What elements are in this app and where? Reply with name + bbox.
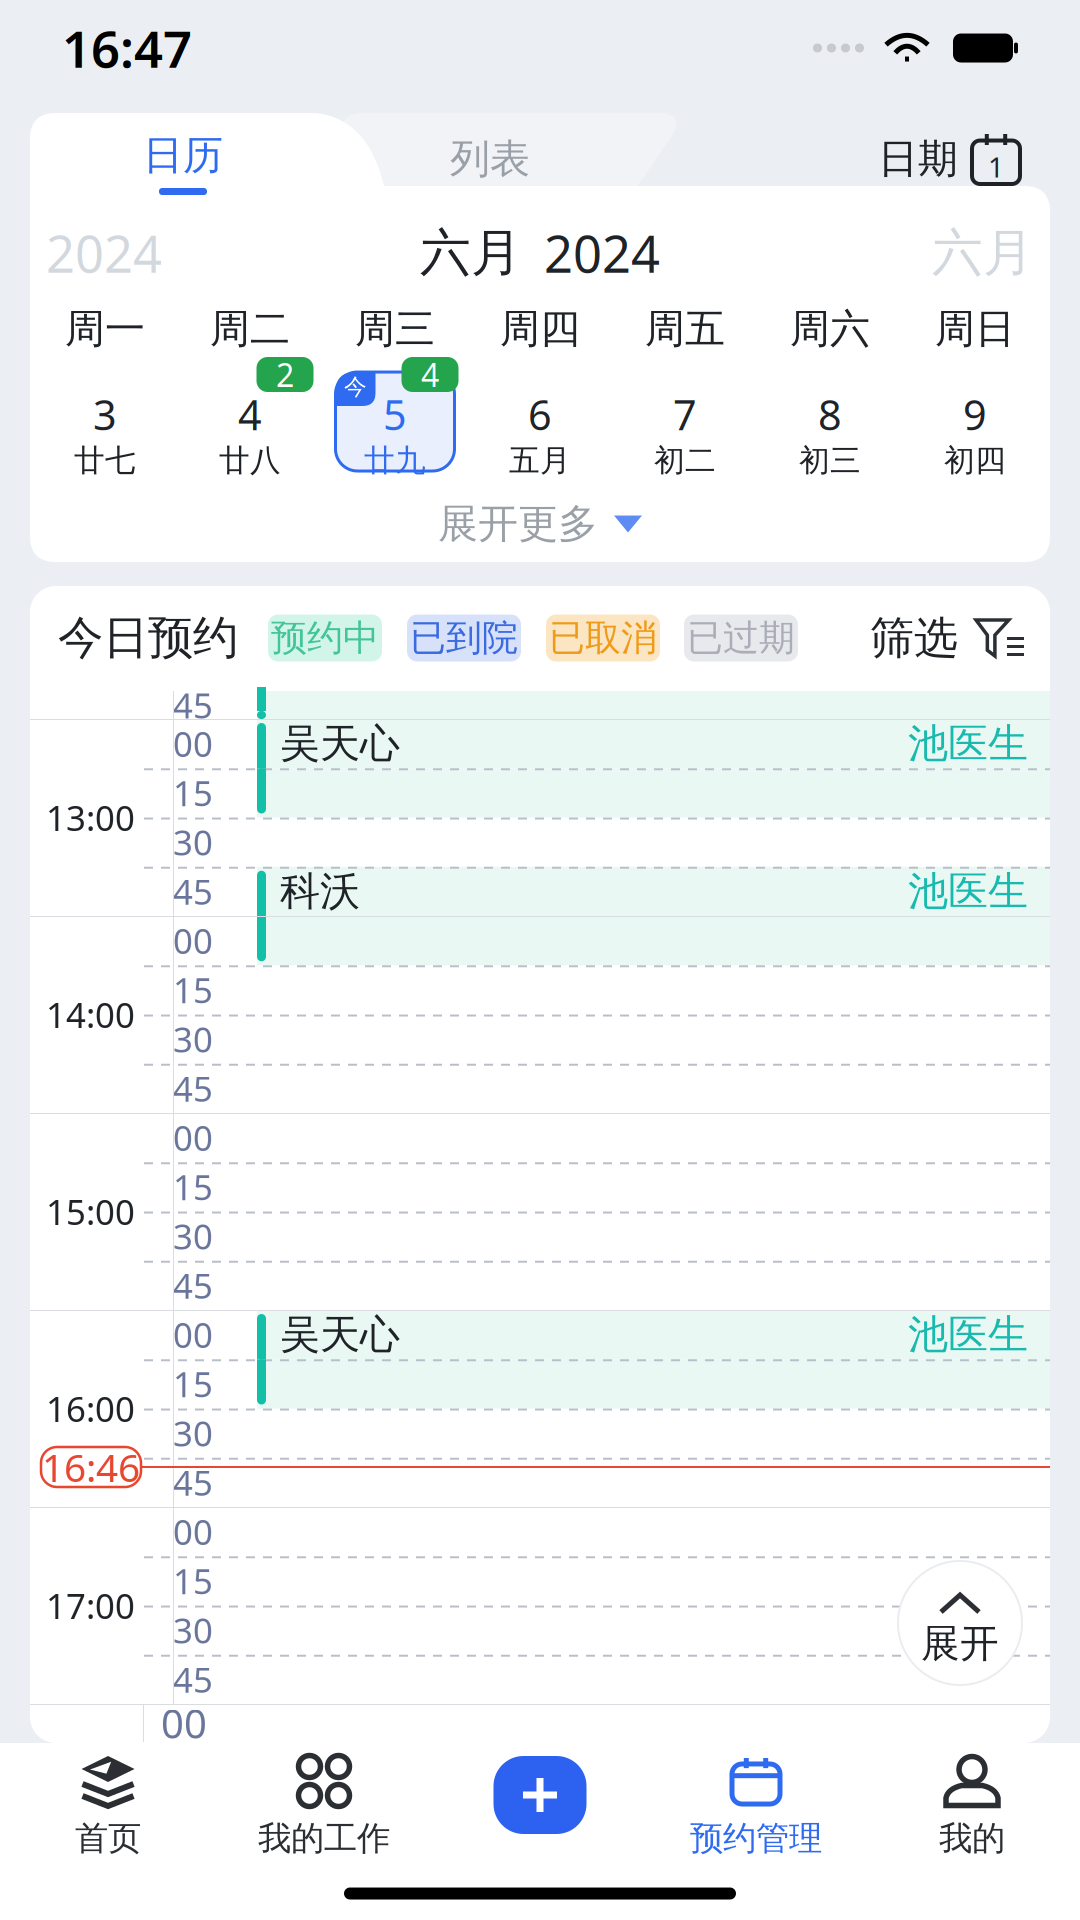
staticText: 预约中 [271, 616, 379, 660]
staticText: 45 [173, 1065, 213, 1111]
staticText: 45 [173, 1459, 213, 1505]
staticText: 15 [173, 1164, 213, 1210]
button[interactable]: 预约管理 [648, 1743, 864, 1867]
staticText: 00 [173, 918, 213, 964]
staticText: 首页 [75, 1818, 141, 1859]
staticText: 日期 [878, 134, 958, 183]
staticText: 已到院 [410, 616, 518, 660]
staticText: 30 [173, 1213, 213, 1259]
button[interactable]: 展开 [898, 1561, 1022, 1685]
staticText: 6 [528, 387, 552, 442]
staticText: 六月 [932, 222, 1034, 284]
staticText: 15 [173, 1558, 213, 1604]
staticText: 五月 [509, 442, 571, 479]
button[interactable]: 已到院 [407, 614, 521, 661]
staticText: 筛选 [870, 611, 958, 665]
button[interactable]: 5 [325, 357, 465, 486]
staticText: 初三 [799, 442, 861, 479]
staticText: 16:00 [46, 1385, 135, 1431]
staticText: 30 [173, 819, 213, 865]
staticText: 16:46 [42, 1441, 140, 1493]
button[interactable]: 6 [470, 357, 610, 486]
staticText: 00 [173, 1115, 213, 1161]
staticText: 六月 [420, 222, 522, 284]
staticText: 廿八 [219, 442, 281, 479]
staticText: 30 [173, 1016, 213, 1062]
staticText: 周二 [210, 304, 290, 353]
staticText: 初四 [944, 442, 1006, 479]
staticText: 15 [173, 967, 213, 1013]
staticText: 45 [173, 1262, 213, 1308]
button[interactable]: 已过期 [684, 614, 798, 661]
button[interactable]: 日历 [30, 113, 336, 205]
staticText: 00 [173, 721, 213, 767]
staticText: 7 [673, 387, 697, 442]
staticText: 预约管理 [690, 1818, 822, 1859]
staticText: 今 [344, 373, 367, 401]
button[interactable]: 9 [905, 357, 1045, 486]
staticText: 2024 [544, 219, 660, 287]
staticText: 4 [238, 387, 262, 442]
staticText: 9 [963, 387, 987, 442]
staticText: 池医生 [908, 867, 1028, 916]
button[interactable]: 3 [35, 357, 175, 486]
button[interactable]: 8 [760, 357, 900, 486]
staticText: 列表 [450, 134, 530, 183]
staticText: 3 [93, 387, 117, 442]
button[interactable]: 我的 [864, 1743, 1080, 1867]
staticText: 已过期 [687, 616, 795, 660]
staticText: 30 [173, 1410, 213, 1456]
button[interactable]: 日期 [878, 113, 1050, 205]
staticText: 周三 [355, 304, 435, 353]
staticText: 展开更多 [438, 499, 598, 548]
button[interactable]: 首页 [0, 1743, 216, 1867]
button[interactable]: 预约中 [268, 614, 382, 661]
staticText: 初二 [654, 442, 716, 479]
staticText: 45 [173, 1656, 213, 1702]
staticText: 展开 [921, 1620, 999, 1667]
button[interactable]: 我的工作 [216, 1743, 432, 1867]
staticText: 周一 [65, 304, 145, 353]
staticText: 科沃 [280, 867, 360, 916]
button[interactable]: 7 [615, 357, 755, 486]
button[interactable]: 4 [180, 357, 320, 486]
staticText: 周日 [935, 304, 1015, 353]
staticText: 周四 [500, 304, 580, 353]
button[interactable]: 列表 [336, 113, 644, 205]
staticText: 日历 [143, 131, 223, 180]
staticText: 15 [173, 770, 213, 816]
staticText: 5 [383, 387, 407, 442]
button[interactable]: 新增 [493, 1756, 586, 1834]
staticText: 2 [276, 353, 294, 396]
staticText: 1 [988, 148, 1004, 185]
button[interactable]: 已取消 [546, 614, 660, 661]
staticText: 8 [818, 387, 842, 442]
button[interactable]: 筛选 [870, 611, 1024, 665]
staticText: 我的 [939, 1818, 1005, 1859]
staticText: 30 [173, 1607, 213, 1653]
staticText: 00 [173, 1509, 213, 1555]
staticText: 15 [173, 1361, 213, 1407]
staticText: 45 [173, 682, 213, 728]
staticText: 已取消 [549, 616, 657, 660]
staticText: 15:00 [46, 1188, 135, 1234]
staticText: 14:00 [46, 991, 135, 1037]
staticText: 4 [421, 353, 439, 396]
staticText: 45 [173, 868, 213, 914]
staticText: 周六 [790, 304, 870, 353]
staticText: 吴天心 [280, 719, 400, 768]
staticText: 00 [161, 1696, 207, 1749]
staticText: 17:00 [46, 1582, 135, 1628]
staticText: 周五 [645, 304, 725, 353]
staticText: 今日预约 [58, 610, 238, 666]
staticText: 廿九 [364, 442, 426, 479]
staticText: 池医生 [908, 719, 1028, 768]
button[interactable]: 展开更多 [30, 486, 1050, 562]
staticText: 吴天心 [280, 1310, 400, 1359]
staticText: 00 [173, 1312, 213, 1358]
staticText: 廿七 [74, 442, 136, 479]
staticText: 我的工作 [258, 1818, 390, 1859]
staticText: 2024 [46, 219, 162, 287]
staticText: 池医生 [908, 1310, 1028, 1359]
staticText: 13:00 [46, 794, 135, 840]
